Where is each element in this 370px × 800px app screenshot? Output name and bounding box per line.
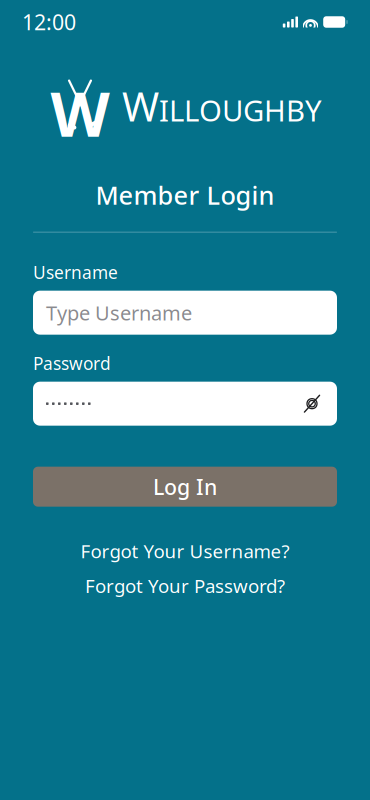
button[interactable]: Forgot Your Password? [85,573,285,598]
staticText: Type Username [46,299,192,326]
button[interactable]: Forgot Your Username? [80,539,289,563]
staticText: Forgot Your Password? [85,573,285,598]
staticText: Member Login [95,178,274,212]
staticText: Username [33,261,118,284]
button[interactable]: Log In [33,467,337,507]
staticText: W [50,72,109,154]
staticText: ILLOUGHBY [159,91,322,130]
staticText: Password [33,352,111,375]
staticText: Log In [153,472,217,501]
button[interactable]: Type Username [33,291,337,335]
button[interactable]: Show password [297,389,327,419]
staticText: Forgot Your Username? [80,539,289,563]
staticText: W [122,79,159,132]
staticText: 12:00 [22,8,76,36]
